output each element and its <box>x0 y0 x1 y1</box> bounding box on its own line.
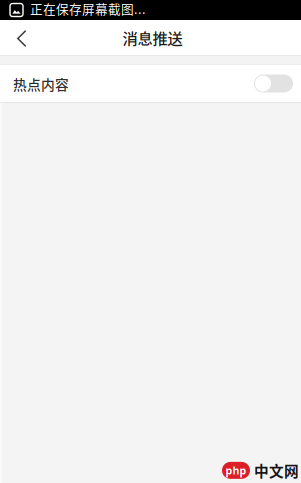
staticText: 中文网 <box>254 460 299 481</box>
staticText: 正在保存屏幕截图... <box>30 0 146 18</box>
staticText: 消息推送 <box>122 26 182 49</box>
staticText: 热点内容 <box>13 74 69 94</box>
staticText: php <box>225 463 246 478</box>
button[interactable]: Back <box>0 20 52 55</box>
button[interactable]: 热点内容 <box>0 65 301 102</box>
